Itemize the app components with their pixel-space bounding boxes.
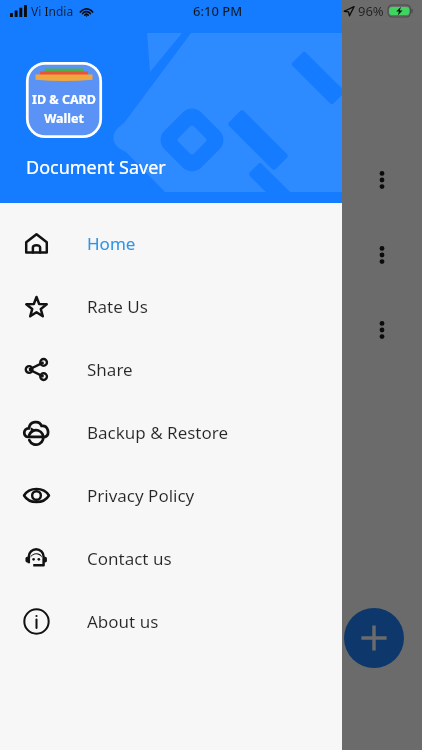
button[interactable]: Home [0, 212, 342, 275]
staticText: Wallet [44, 110, 84, 127]
button[interactable]: Contact us [0, 527, 342, 590]
staticText: Backup & Restore [87, 421, 229, 444]
staticText: Privacy Policy [87, 484, 195, 507]
button[interactable]: Backup & Restore [0, 401, 342, 464]
staticText: About us [87, 610, 159, 633]
staticText: Document Saver [26, 155, 166, 180]
button[interactable]: More options [370, 243, 394, 267]
staticText: Contact us [87, 547, 172, 570]
button[interactable]: More options [370, 168, 394, 192]
staticText: Rate Us [87, 295, 148, 318]
staticText: ID & CARD [32, 91, 96, 108]
button[interactable]: About us [0, 590, 342, 653]
staticText: Share [87, 358, 133, 381]
button[interactable]: Privacy Policy [0, 464, 342, 527]
staticText: 96% [358, 2, 384, 20]
staticText: Vi India [31, 3, 74, 19]
button[interactable]: More options [370, 318, 394, 342]
button[interactable]: Rate Us [0, 275, 342, 338]
button[interactable]: Add document [344, 608, 404, 668]
staticText: 6:10 PM [193, 2, 243, 20]
button[interactable]: Share [0, 338, 342, 401]
staticText: Home [87, 232, 136, 255]
